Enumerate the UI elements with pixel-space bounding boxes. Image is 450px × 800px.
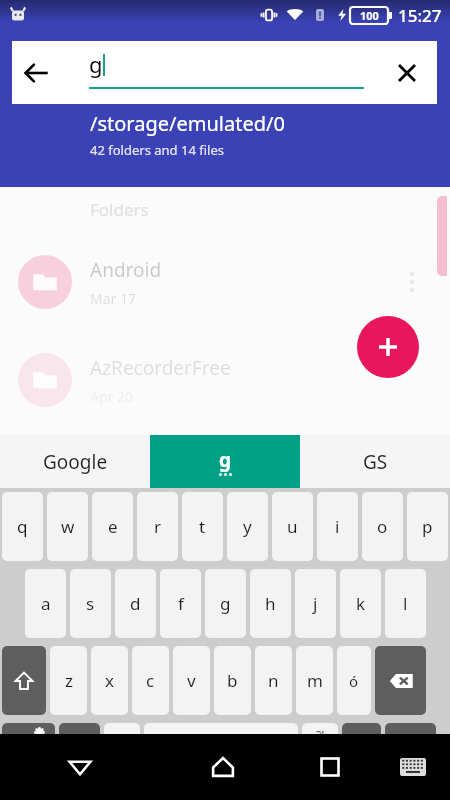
button[interactable]: f [160, 569, 201, 638]
staticText: j [313, 592, 318, 615]
button[interactable] [144, 723, 298, 792]
staticText: u [287, 515, 298, 538]
button[interactable]: e [92, 492, 133, 561]
staticText: Mar 17 [90, 289, 136, 308]
button[interactable]: k [340, 569, 381, 638]
button[interactable]: VI [342, 723, 381, 792]
button[interactable]: p [407, 492, 448, 561]
button[interactable]: w [47, 492, 88, 561]
staticText: z [65, 669, 73, 692]
button[interactable]: ó [337, 646, 371, 715]
staticText: ó [349, 671, 359, 691]
staticText: c [146, 669, 155, 692]
button[interactable] [375, 646, 426, 715]
staticText: f [178, 592, 184, 615]
staticText: 100 [360, 8, 379, 23]
button[interactable]: Back [0, 734, 160, 800]
button[interactable]: ?! [302, 723, 338, 792]
staticText: Android [90, 257, 162, 283]
button[interactable]: 12!? [2, 723, 55, 792]
staticText: h [265, 592, 276, 615]
button[interactable]: r [137, 492, 178, 561]
button[interactable]: b [214, 646, 251, 715]
button[interactable] [59, 723, 100, 792]
staticText: y [243, 515, 252, 538]
staticText: o [377, 515, 388, 538]
staticText: m [307, 669, 323, 692]
button[interactable]: Home [160, 734, 285, 800]
staticText: t [199, 515, 206, 538]
button[interactable]: s [70, 569, 111, 638]
button[interactable]: u [272, 492, 313, 561]
staticText: e [108, 515, 118, 538]
staticText: Google [43, 449, 108, 475]
button[interactable]: q [2, 492, 43, 561]
staticText: g [219, 447, 232, 473]
button[interactable]: g [150, 435, 300, 488]
staticText: Apr 20 [90, 387, 133, 406]
staticText: v [187, 669, 196, 692]
button[interactable]: x [91, 646, 128, 715]
button[interactable]: GS [300, 435, 450, 488]
staticText: ?! [316, 727, 325, 743]
button[interactable]: d [115, 569, 156, 638]
button[interactable]: Google [0, 435, 150, 488]
staticText: d [130, 592, 141, 615]
button[interactable]: Recents [285, 734, 375, 800]
button[interactable]: n [255, 646, 292, 715]
button[interactable]: t [182, 492, 223, 561]
staticText: n [268, 669, 279, 692]
staticText: k [356, 592, 366, 615]
button[interactable] [2, 646, 46, 715]
button[interactable]: Add [357, 316, 419, 378]
staticText: p [422, 515, 433, 538]
staticText: . [318, 741, 323, 766]
staticText: a [41, 592, 51, 615]
staticText: GS [363, 449, 388, 475]
button[interactable]: , [104, 723, 140, 792]
staticText: /storage/emulated/0 [90, 110, 285, 137]
button[interactable]: i [317, 492, 358, 561]
button[interactable]: j [295, 569, 336, 638]
button[interactable]: c [132, 646, 169, 715]
button[interactable]: y [227, 492, 268, 561]
staticText: b [227, 669, 238, 692]
staticText: w [61, 515, 75, 538]
button[interactable]: Clear [385, 51, 429, 95]
staticText: Folders [90, 198, 149, 221]
staticText: r [154, 515, 162, 538]
staticText: s [86, 592, 95, 615]
button[interactable]: z [50, 646, 87, 715]
staticText: 15:27 [398, 4, 442, 27]
staticText: q [17, 515, 28, 538]
staticText: i [335, 515, 340, 538]
button[interactable] [385, 723, 436, 792]
staticText: 42 folders and 14 files [90, 141, 224, 159]
staticText: x [105, 669, 114, 692]
button[interactable]: a [25, 569, 66, 638]
button[interactable]: Switch keyboard [375, 734, 450, 800]
button[interactable]: g [205, 569, 246, 638]
staticText: g [220, 592, 231, 615]
button[interactable]: h [250, 569, 291, 638]
button[interactable]: v [173, 646, 210, 715]
button[interactable]: l [385, 569, 426, 638]
button[interactable]: o [362, 492, 403, 561]
staticText: g [89, 49, 103, 79]
staticText: AzRecorderFree [90, 355, 231, 381]
staticText: l [403, 592, 408, 615]
button[interactable]: Back [12, 49, 60, 97]
button[interactable]: m [296, 646, 333, 715]
